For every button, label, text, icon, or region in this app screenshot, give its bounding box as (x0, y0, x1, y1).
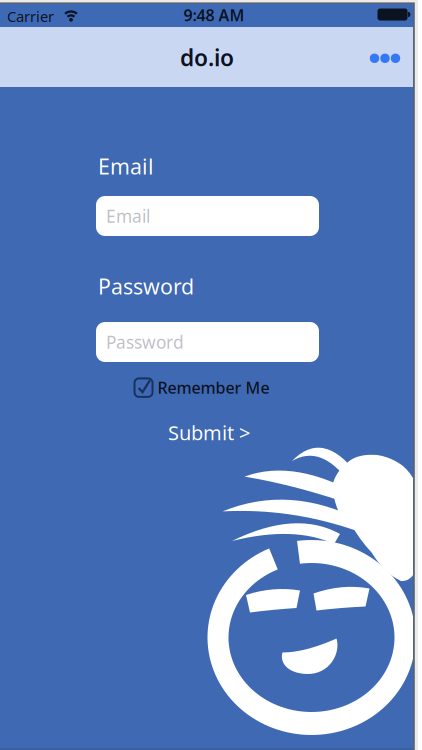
staticText: Submit > (168, 419, 250, 446)
staticText: Carrier (7, 6, 54, 26)
staticText: Email (106, 204, 150, 227)
staticText: Password (98, 272, 194, 300)
staticText: Remember Me (157, 377, 269, 398)
staticText: Email (98, 152, 154, 180)
staticText: 9:48 AM (183, 4, 244, 26)
button[interactable]: Password (96, 322, 319, 362)
staticText: Password (106, 330, 184, 353)
button[interactable]: Submit > (168, 419, 250, 446)
button[interactable]: More (369, 53, 400, 63)
button[interactable]: Remember Me (134, 377, 269, 398)
staticText: do.io (180, 42, 234, 72)
button[interactable]: Email (96, 196, 319, 236)
